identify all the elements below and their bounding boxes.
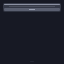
button[interactable]: Action [3, 3, 61, 12]
button[interactable]: Action [4, 8, 60, 11]
